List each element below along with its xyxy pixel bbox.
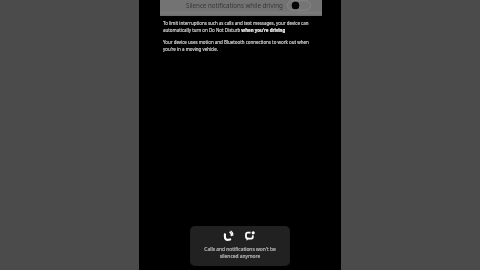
button[interactable]: Ring volume [190,226,290,266]
other: Silence notifications while driving togg… [287,0,313,11]
staticText: Calls and notifications won't be silence… [200,246,280,260]
staticText: To limit interruptions such as calls and… [163,20,310,33]
staticText: Your device uses motion and Bluetooth co… [163,39,310,52]
staticText: Silence notifications while driving [186,1,283,9]
other: Messages [245,231,255,241]
other: Ring volume [223,231,233,241]
button[interactable]: Silence notifications while driving [160,0,322,16]
